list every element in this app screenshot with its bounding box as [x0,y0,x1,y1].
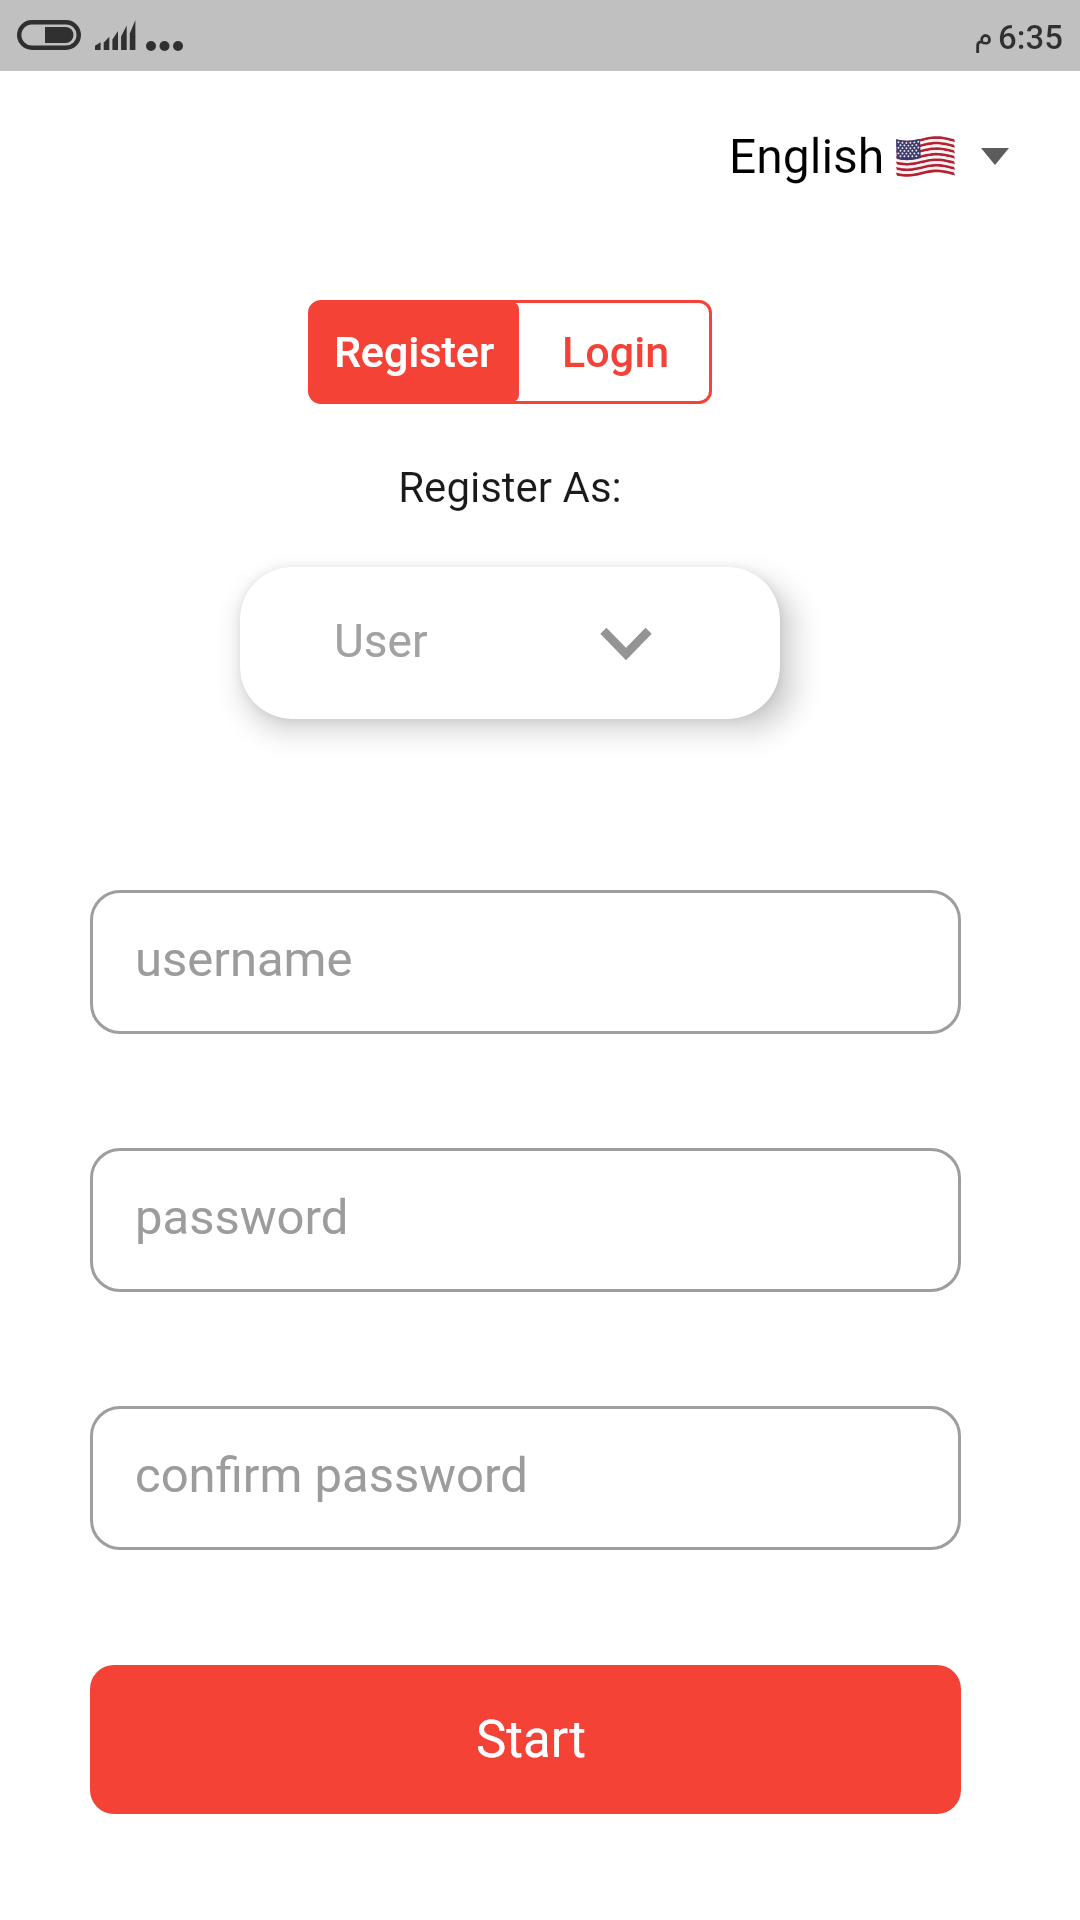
staticText: password [135,1189,349,1246]
staticText: Register [334,327,495,377]
button[interactable]: Login [519,300,712,404]
staticText: User [334,614,428,668]
staticText: confirm password [135,1447,528,1504]
button[interactable]: confirm password [90,1406,961,1550]
button[interactable]: Start [90,1665,961,1814]
button[interactable]: Register as: User [240,567,780,719]
staticText: م [974,17,994,53]
staticText: Start [476,1710,586,1770]
staticText: Register As: [240,463,780,512]
staticText: English [729,128,885,184]
staticText: username [135,931,353,988]
button[interactable]: password [90,1148,961,1292]
staticText: 6:35 [998,18,1064,57]
button[interactable]: Register [310,302,519,402]
button[interactable]: username [90,890,961,1034]
staticText: Login [562,327,670,377]
button[interactable]: Change language, English [715,118,1023,194]
